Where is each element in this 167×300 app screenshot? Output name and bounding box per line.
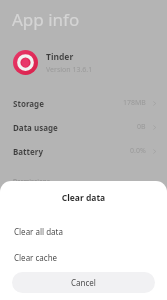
staticText: 178MB bbox=[123, 98, 146, 108]
staticText: App info bbox=[12, 8, 80, 31]
staticText: Storage bbox=[13, 98, 44, 109]
staticText: Clear cache bbox=[14, 252, 58, 263]
staticText: Clear all data bbox=[14, 226, 63, 237]
staticText: Permissions bbox=[13, 177, 51, 186]
staticText: Data usage bbox=[13, 122, 58, 133]
other: Open bbox=[151, 124, 158, 131]
other: Open bbox=[151, 100, 158, 107]
staticText: Version 13.6.1 bbox=[46, 65, 93, 75]
staticText: 0B bbox=[137, 122, 146, 132]
button[interactable]: Storage bbox=[0, 91, 167, 115]
button[interactable]: Battery bbox=[0, 139, 167, 163]
staticText: Battery bbox=[13, 146, 43, 157]
staticText: Tinder bbox=[46, 51, 74, 63]
button[interactable]: Cancel bbox=[12, 272, 155, 293]
button[interactable]: Clear all data bbox=[0, 218, 167, 244]
other: Tinder app icon bbox=[13, 50, 38, 75]
button[interactable]: Tinder app icon bbox=[0, 48, 167, 77]
button[interactable]: Clear cache bbox=[0, 244, 167, 270]
other: Open bbox=[151, 148, 158, 155]
staticText: 0.0% bbox=[130, 146, 146, 156]
staticText: Cancel bbox=[71, 277, 96, 288]
button[interactable]: Data usage bbox=[0, 115, 167, 139]
staticText: Clear data bbox=[0, 192, 167, 204]
